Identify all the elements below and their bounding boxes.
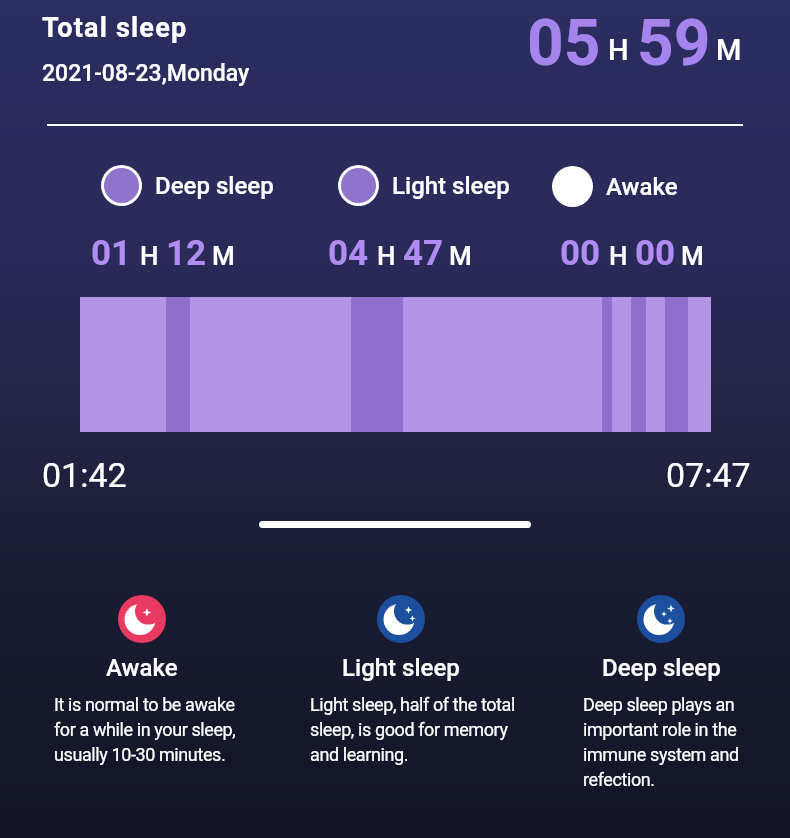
staticText: 47: [403, 233, 444, 274]
staticText: M: [681, 241, 704, 271]
button[interactable]: Deep sleep: [101, 165, 274, 206]
staticText: Light sleep: [342, 654, 460, 682]
staticText: 04: [328, 233, 369, 274]
staticText: 00: [635, 233, 676, 274]
staticText: M: [716, 33, 742, 67]
staticText: Deep sleep: [155, 172, 274, 200]
staticText: Light sleep: [392, 172, 510, 200]
staticText: Awake: [106, 654, 178, 682]
staticText: 12: [166, 233, 207, 274]
staticText: It is normal to be awake for a while in …: [54, 694, 236, 765]
staticText: H: [140, 241, 159, 271]
staticText: 01:42: [42, 455, 127, 495]
button[interactable]: [259, 521, 531, 528]
staticText: M: [212, 241, 235, 271]
staticText: 59: [637, 6, 711, 81]
staticText: Deep sleep: [602, 654, 721, 682]
staticText: Awake: [606, 173, 678, 201]
staticText: 05: [527, 6, 601, 81]
staticText: 01: [91, 233, 132, 274]
button[interactable]: Light sleep: [338, 165, 510, 206]
staticText: H: [608, 33, 629, 67]
staticText: M: [449, 241, 472, 271]
staticText: 2021-08-23,Monday: [42, 60, 250, 87]
staticText: H: [377, 241, 396, 271]
button[interactable]: [118, 595, 166, 643]
button[interactable]: [377, 595, 425, 643]
staticText: Deep sleep plays an important role in th…: [583, 694, 739, 790]
staticText: 07:47: [666, 455, 751, 495]
staticText: Light sleep, half of the total sleep, is…: [310, 694, 515, 765]
staticText: Total sleep: [42, 12, 188, 44]
button[interactable]: [637, 595, 685, 643]
button[interactable]: Awake: [552, 166, 678, 207]
staticText: 00: [560, 233, 601, 274]
staticText: H: [609, 241, 628, 271]
